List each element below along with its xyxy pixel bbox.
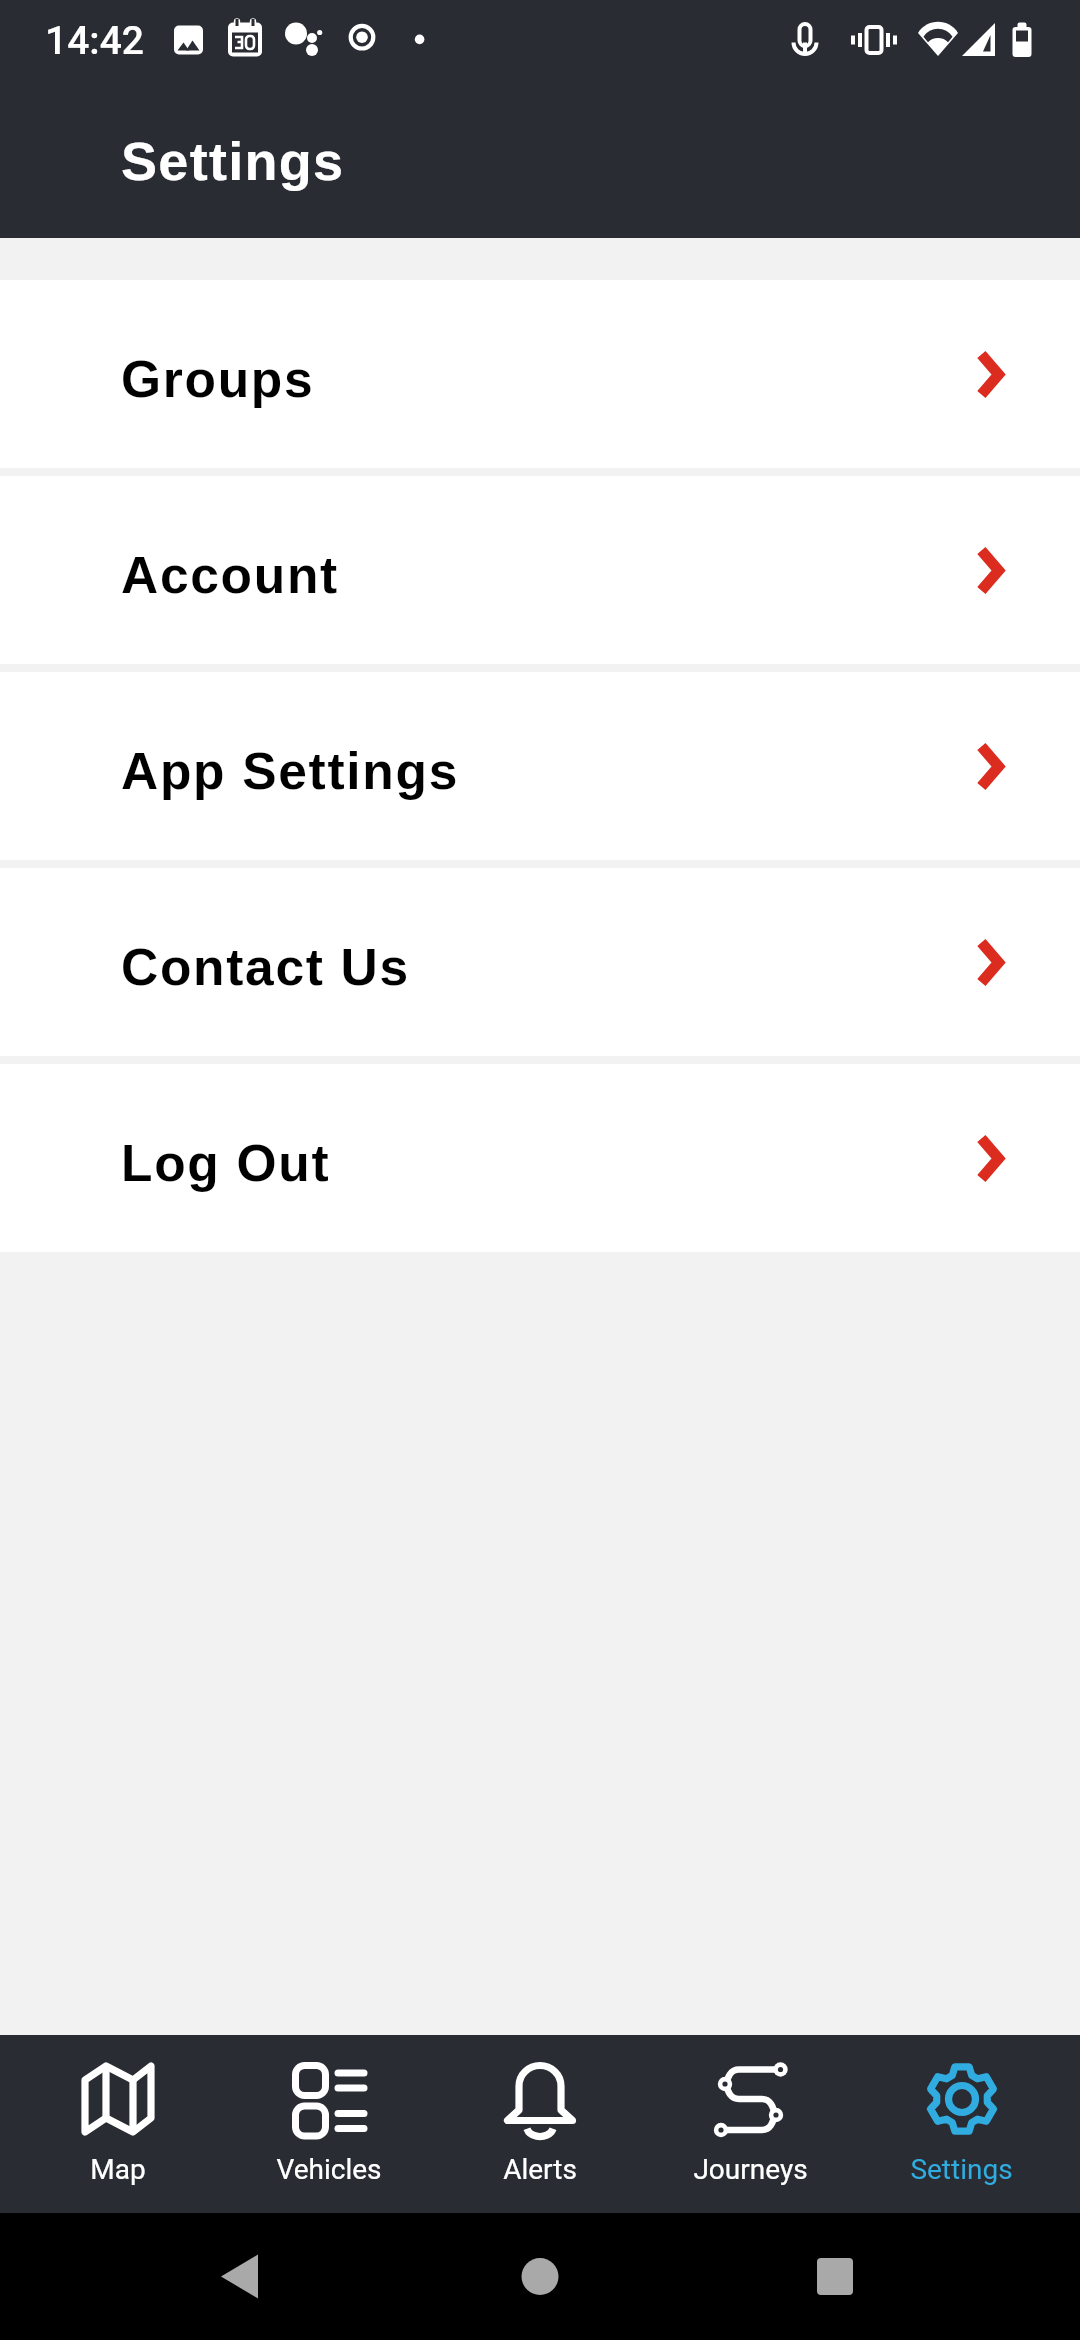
staticText: Log Out [121, 1134, 331, 1192]
button[interactable]: Groups [0, 280, 1080, 468]
other: Open Contact Us [976, 937, 1004, 988]
other: Open Groups [976, 349, 1004, 400]
button[interactable]: Home [360, 2213, 720, 2340]
staticText: 14:42 [45, 18, 145, 64]
other: Open Log Out [976, 1133, 1004, 1184]
button[interactable]: Back [0, 2213, 360, 2340]
button[interactable]: App Settings [0, 672, 1080, 860]
button[interactable]: Journeys [645, 2035, 856, 2213]
other: Open Account [976, 545, 1004, 596]
other: Open App Settings [976, 741, 1004, 792]
staticText: Account [121, 546, 339, 604]
staticText: Journeys [693, 2153, 808, 2186]
staticText: Vehicles [276, 2153, 382, 2186]
button[interactable]: Settings [856, 2035, 1067, 2213]
button[interactable]: Alerts [434, 2035, 645, 2213]
button[interactable]: Recent apps [720, 2213, 1080, 2340]
staticText: App Settings [121, 742, 459, 800]
button[interactable]: Account [0, 476, 1080, 664]
staticText: Settings [910, 2153, 1013, 2186]
button[interactable]: Contact Us [0, 868, 1080, 1056]
button[interactable]: Vehicles [223, 2035, 434, 2213]
staticText: Contact Us [121, 938, 410, 996]
staticText: Alerts [503, 2153, 577, 2186]
button[interactable]: Map [13, 2035, 223, 2213]
staticText: Settings [121, 131, 345, 191]
button[interactable]: Log Out [0, 1064, 1080, 1252]
staticText: Map [90, 2153, 146, 2186]
staticText: Groups [121, 350, 315, 408]
